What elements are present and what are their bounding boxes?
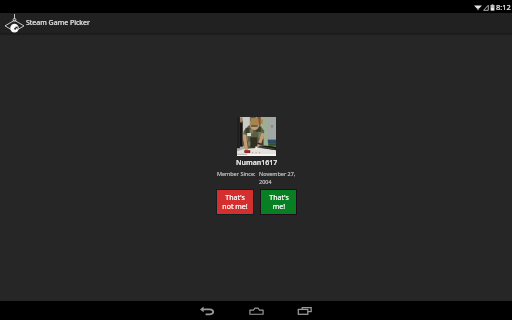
staticText: That's me! [269,193,289,211]
staticText: Numan1617 [236,158,278,168]
staticText: November 27, 2004 [259,170,296,186]
button[interactable]: That's not me! [217,190,253,214]
staticText: Member Since: [217,170,257,177]
staticText: 8:12 [496,2,511,12]
button[interactable]: Back [192,301,222,320]
button[interactable]: Recent apps [290,301,320,320]
staticText: That's not me! [222,193,248,211]
button[interactable]: That's me! [261,190,296,214]
button[interactable]: Home [241,301,271,320]
staticText: Steam Game Picker [26,18,90,28]
